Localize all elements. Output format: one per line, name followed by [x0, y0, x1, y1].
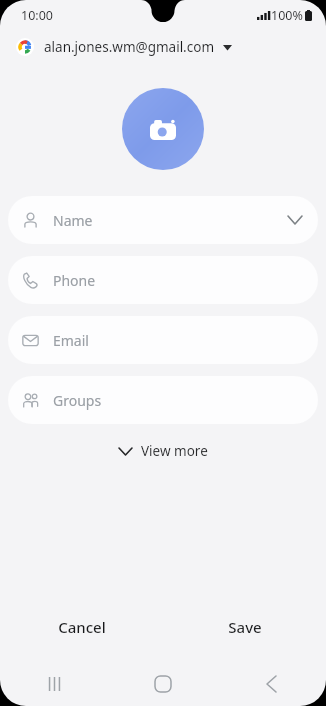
- button[interactable]: Email: [8, 316, 318, 364]
- button[interactable]: Phone: [8, 256, 318, 304]
- button[interactable]: Name: [8, 196, 318, 244]
- staticText: Cancel: [58, 617, 106, 637]
- staticText: 10:00: [21, 7, 53, 24]
- button[interactable]: Groups: [8, 376, 318, 424]
- staticText: Name: [53, 211, 93, 230]
- staticText: View more: [141, 442, 208, 460]
- staticText: Save: [228, 617, 262, 637]
- staticText: Email: [53, 331, 89, 350]
- staticText: Phone: [53, 271, 96, 290]
- button[interactable]: View more: [105, 434, 222, 468]
- button[interactable]: Recents: [0, 662, 108, 706]
- button[interactable]: Add photo: [122, 88, 204, 170]
- button[interactable]: alan.jones.wm@gmail.com: [0, 30, 326, 64]
- button[interactable]: Save: [163, 606, 326, 648]
- staticText: alan.jones.wm@gmail.com: [44, 38, 215, 56]
- staticText: 100%: [271, 7, 303, 24]
- button[interactable]: Cancel: [0, 606, 163, 648]
- button[interactable]: Back: [217, 662, 326, 706]
- staticText: Groups: [53, 391, 102, 410]
- button[interactable]: Home: [108, 662, 217, 706]
